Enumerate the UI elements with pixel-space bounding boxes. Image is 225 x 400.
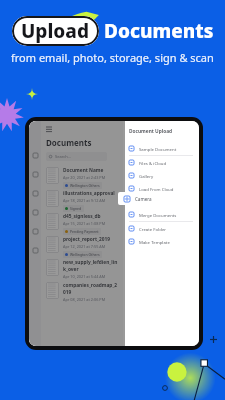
button[interactable]: Load From Cloud [129,182,193,195]
button[interactable] [31,189,39,197]
staticText: Wellington Others [70,252,100,257]
staticText: Apr 10, 2021 at 5:44 AM [63,274,106,279]
button[interactable]: Gallery [129,169,193,182]
staticText: Upload [21,18,90,44]
staticText: Create Folder [139,226,167,232]
staticText: Files & iCloud [139,160,167,166]
button[interactable]: Document Name [46,166,118,189]
staticText: Wellington Others [70,183,100,188]
staticText: Apr 12, 2021 at 7:55 AM [63,244,106,249]
staticText: Search... [55,154,71,159]
staticText: Documents [104,18,214,44]
staticText: new_supply_lefdien_link_over [63,259,118,273]
button[interactable]: Upload [12,16,99,46]
staticText: from email, photo, storage, sign & scan [11,50,214,65]
staticText: Make Template [139,239,170,245]
staticText: project_report_2019 [63,236,111,243]
staticText: Document Name [63,167,104,174]
button[interactable]: project_report_2019 [46,235,118,258]
button[interactable]: Merge Documents [129,208,193,221]
button[interactable] [31,208,39,216]
button[interactable]: illustrations_approval [46,189,118,212]
staticText: Camera [139,199,155,205]
button[interactable] [31,246,39,254]
button[interactable] [31,170,39,178]
button[interactable]: Create Folder [129,222,193,235]
button[interactable]: Files & iCloud [129,156,193,169]
staticText: Camera [135,196,152,202]
staticText: Apr 08, 2021 at 2:06 PM [63,297,106,302]
staticText: companies_roadmap_2019 [63,282,118,296]
staticText: Document Upload [129,128,173,135]
staticText: Pending Payment [70,229,99,234]
button[interactable]: Menu [46,126,54,134]
button[interactable]: Search... [46,152,107,161]
button[interactable]: companies_roadmap_2019 [46,281,118,304]
staticText: Gallery [139,173,154,179]
staticText: Apr 15, 2021 at 1:08 PM [63,221,106,226]
staticText: Documents [46,137,92,148]
button[interactable] [31,151,39,159]
button[interactable]: Sample Document [129,142,193,155]
button[interactable]: Camera [118,192,199,205]
staticText: d45_signless_db [63,213,101,220]
button[interactable]: new_supply_lefdien_link_over [46,258,118,281]
staticText: Load From Cloud [139,186,174,192]
staticText: Apr 18, 2021 at 9:12 AM [63,198,106,203]
button[interactable]: Camera [129,195,193,208]
staticText: Sample Document [139,146,177,152]
staticText: Signed [70,206,82,211]
staticText: Merge Documents [139,212,177,218]
staticText: Apr 20, 2021 at 2:43 PM [63,175,106,180]
staticText: illustrations_approval [63,190,115,197]
button[interactable]: d45_signless_db [46,212,118,235]
button[interactable]: Make Template [129,235,193,248]
button[interactable] [31,227,39,235]
